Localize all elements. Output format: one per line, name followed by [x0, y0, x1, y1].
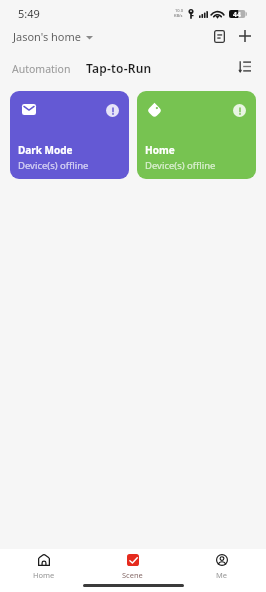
button[interactable]: Automation [6, 58, 77, 80]
button[interactable]: Me [177, 549, 266, 592]
staticText: Scene [122, 570, 143, 580]
staticText: Home [145, 143, 175, 157]
staticText: Home [33, 570, 55, 580]
staticText: 10.0 [175, 8, 183, 13]
staticText: 44 [233, 10, 241, 18]
staticText: KB/s [174, 13, 183, 18]
button[interactable]: Sort [234, 55, 256, 77]
button[interactable]: Device list [208, 25, 230, 47]
staticText: Automation [12, 62, 71, 76]
button[interactable]: Info [137, 91, 256, 179]
staticText: Me [216, 570, 228, 580]
button[interactable]: Home [0, 549, 88, 592]
button[interactable]: Info [233, 104, 246, 117]
button[interactable]: Jason's home [7, 26, 99, 47]
staticText: Dark Mode [18, 143, 73, 157]
button[interactable]: Tap-to-Run [80, 56, 158, 80]
staticText: Jason's home [13, 29, 82, 44]
button[interactable]: Scene [88, 549, 177, 592]
button[interactable]: Info [10, 91, 129, 179]
staticText: Device(s) offline [145, 159, 216, 172]
button[interactable]: Info [106, 104, 119, 117]
staticText: Device(s) offline [18, 159, 89, 172]
button[interactable]: Add [234, 25, 256, 47]
staticText: Tap-to-Run [86, 60, 152, 76]
staticText: 5:49 [18, 6, 40, 21]
